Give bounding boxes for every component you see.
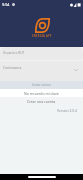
other: Mostrar clave bbox=[74, 69, 78, 71]
staticText: Iniciar sesion bbox=[32, 83, 51, 87]
staticText: 9:54 bbox=[2, 2, 10, 7]
staticText: ENERGIA APP bbox=[32, 34, 52, 38]
staticText: Contrasena bbox=[3, 65, 22, 70]
button[interactable]: No recuerdo mi clave bbox=[0, 89, 83, 97]
button[interactable]: Iniciar sesion bbox=[0, 81, 83, 89]
staticText: No recuerdo mi clave bbox=[24, 91, 59, 96]
staticText: Version 2.0.4 bbox=[57, 108, 77, 112]
button[interactable]: Usuario o RUT bbox=[0, 47, 83, 60]
staticText: Usuario o RUT bbox=[3, 51, 25, 55]
button[interactable]: Crear una cuenta bbox=[0, 97, 83, 106]
button[interactable]: Contrasena bbox=[0, 61, 83, 81]
staticText: Crear una cuenta bbox=[27, 99, 56, 104]
